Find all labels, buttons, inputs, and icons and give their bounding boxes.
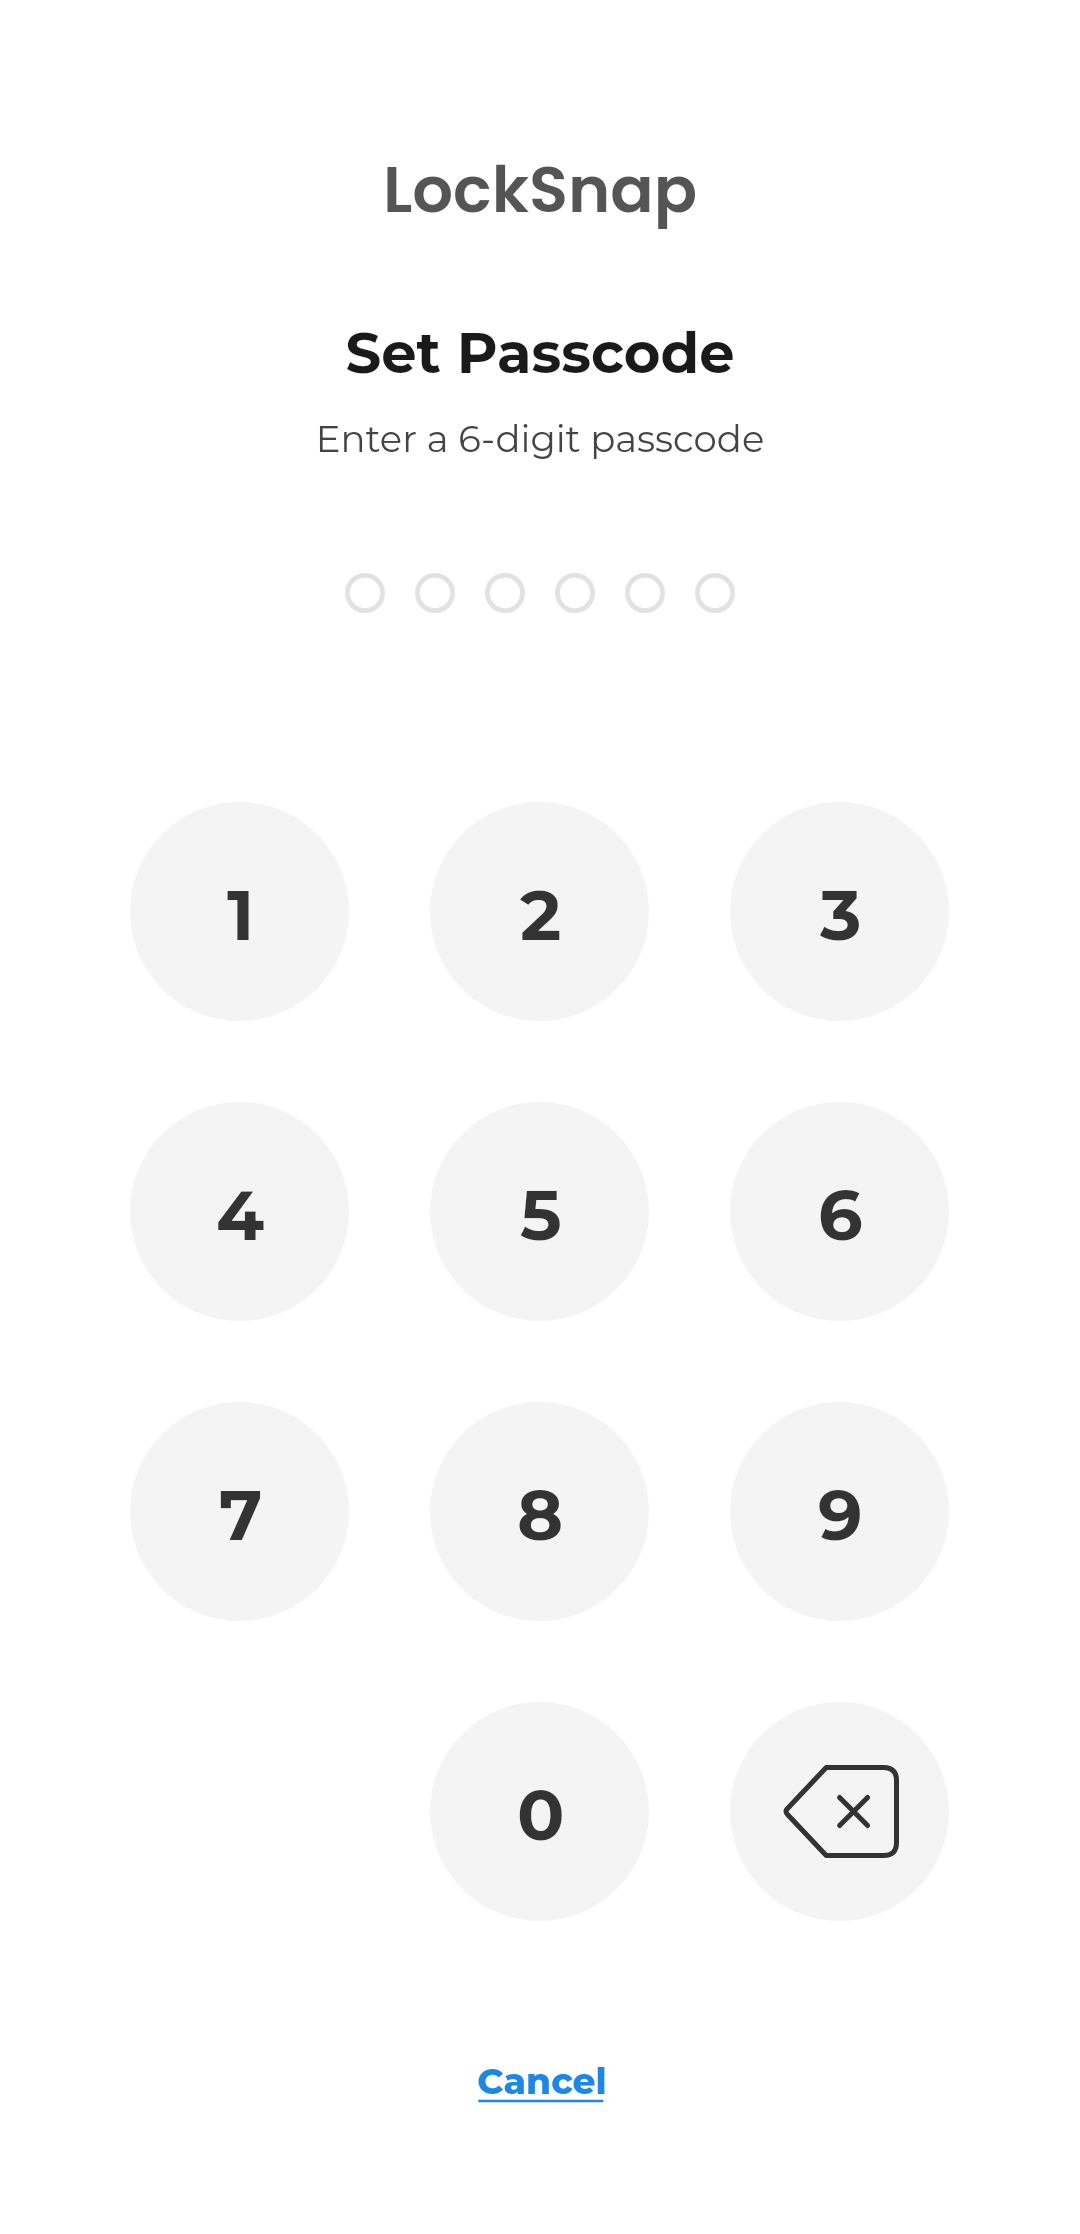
staticText: Enter a 6-digit passcode [0,416,1080,461]
button[interactable]: Cancel [470,2050,610,2110]
staticText: 7 [219,1472,263,1557]
staticText: 3 [820,872,862,957]
staticText: 9 [818,1472,863,1557]
button[interactable]: 7 [130,1402,349,1621]
staticText: Cancel [477,2059,607,2103]
button[interactable]: 9 [730,1402,949,1621]
button[interactable]: 3 [730,802,949,1021]
staticText: 1 [227,872,255,957]
staticText: LockSnap [0,145,1080,235]
staticText: 4 [216,1172,265,1257]
staticText: Set Passcode [0,319,1080,387]
button[interactable]: 4 [130,1102,349,1321]
button[interactable]: 8 [430,1402,649,1621]
button[interactable]: 0 [430,1702,649,1921]
staticText: 0 [517,1772,565,1857]
staticText: 2 [520,872,562,957]
button[interactable]: Delete last digit [730,1702,949,1921]
button[interactable]: 6 [730,1102,949,1321]
button[interactable]: 2 [430,802,649,1021]
staticText: 8 [517,1472,564,1557]
button[interactable]: 5 [430,1102,649,1321]
staticText: 6 [818,1172,863,1257]
button[interactable]: 1 [130,802,349,1021]
staticText: 5 [520,1172,562,1257]
